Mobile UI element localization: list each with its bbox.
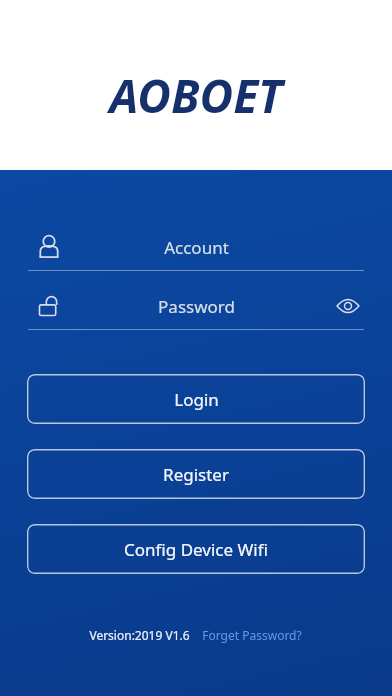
button[interactable]: Config Device Wifi xyxy=(27,524,365,574)
button[interactable]: Password xyxy=(28,283,364,330)
button[interactable]: Login xyxy=(27,374,365,424)
button[interactable]: Register xyxy=(27,449,365,499)
staticText: Register xyxy=(163,463,229,486)
staticText: Config Device Wifi xyxy=(124,538,268,561)
button[interactable]: Forget Password? xyxy=(200,625,304,645)
button[interactable]: Show password xyxy=(332,290,364,322)
staticText: Login xyxy=(174,388,219,411)
staticText: Password xyxy=(158,295,235,318)
staticText: Version:2019 V1.6 xyxy=(89,627,190,643)
button[interactable]: Account xyxy=(28,224,364,271)
staticText: Forget Password? xyxy=(202,627,302,643)
staticText: Account xyxy=(164,236,229,259)
staticText: AOBOET xyxy=(109,64,283,127)
